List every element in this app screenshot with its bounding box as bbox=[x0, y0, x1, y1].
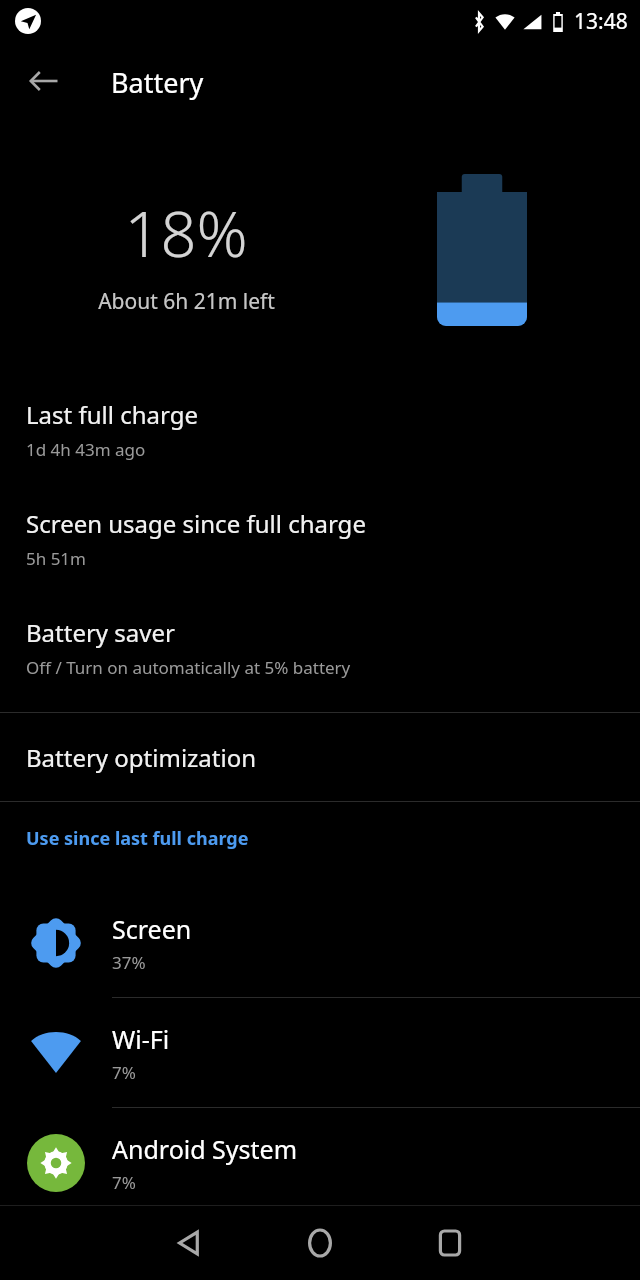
staticText: Use since last full charge bbox=[26, 826, 249, 851]
button[interactable]: Wi-Fi bbox=[0, 998, 640, 1108]
button[interactable]: Last full charge bbox=[0, 372, 640, 481]
staticText: 37% bbox=[112, 951, 146, 974]
staticText: Battery saver bbox=[26, 616, 175, 649]
staticText: Android System bbox=[112, 1132, 298, 1166]
staticText: 13:48 bbox=[574, 7, 628, 36]
button[interactable]: Recent apps bbox=[420, 1213, 480, 1273]
staticText: Screen bbox=[112, 912, 192, 946]
staticText: Battery bbox=[111, 64, 204, 101]
staticText: 7% bbox=[112, 1171, 136, 1194]
button[interactable]: Android System bbox=[0, 1108, 640, 1218]
button[interactable]: Back bbox=[160, 1213, 220, 1273]
staticText: Screen usage since full charge bbox=[26, 507, 366, 540]
staticText: 18% bbox=[124, 190, 248, 276]
button[interactable]: Screen usage since full charge bbox=[0, 481, 640, 590]
button[interactable]: Back bbox=[22, 59, 66, 103]
staticText: Last full charge bbox=[26, 398, 198, 431]
button[interactable]: Battery optimization bbox=[0, 713, 640, 801]
staticText: About 6h 21m left bbox=[98, 287, 275, 316]
staticText: Wi-Fi bbox=[112, 1022, 170, 1056]
button[interactable]: Battery saver bbox=[0, 590, 640, 699]
staticText: 7% bbox=[112, 1061, 136, 1084]
staticText: 1d 4h 43m ago bbox=[26, 438, 146, 461]
staticText: 5h 51m bbox=[26, 547, 86, 570]
staticText: Off / Turn on automatically at 5% batter… bbox=[26, 656, 351, 679]
staticText: Battery optimization bbox=[26, 741, 257, 774]
button[interactable]: Home bbox=[290, 1213, 350, 1273]
button[interactable]: Screen bbox=[0, 888, 640, 998]
